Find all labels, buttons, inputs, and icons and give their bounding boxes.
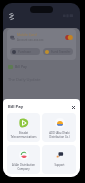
button[interactable]: Fund Transfer: [43, 48, 73, 55]
staticText: Fund Transfer: [51, 50, 71, 54]
button[interactable]: Support: [42, 145, 76, 174]
button[interactable]: ADD (Abu Dhabi Distribution Co.): [42, 113, 76, 142]
button[interactable]: Etisalat Telecommunications: [7, 113, 40, 142]
button[interactable]: Close: [69, 103, 77, 111]
staticText: Bill Pay: [8, 104, 24, 110]
staticText: Etisalat Telecommunications: [10, 131, 37, 138]
staticText: ADD (Abu Dhabi Distribution Co.): [49, 131, 70, 138]
button[interactable]: Al Ain Distribution Company: [7, 145, 40, 174]
staticText: Bill Pay: [15, 64, 27, 69]
staticText: Purchase: [18, 50, 31, 54]
staticText: Al Ain Distribution Company: [12, 163, 35, 170]
staticText: Support: [54, 163, 65, 167]
staticText: Mobile Card: [17, 32, 37, 37]
staticText: Account xxx-xxx-xxx: [17, 38, 44, 42]
staticText: The Daily Update: [8, 77, 41, 82]
button[interactable]: Purchase: [10, 48, 40, 55]
